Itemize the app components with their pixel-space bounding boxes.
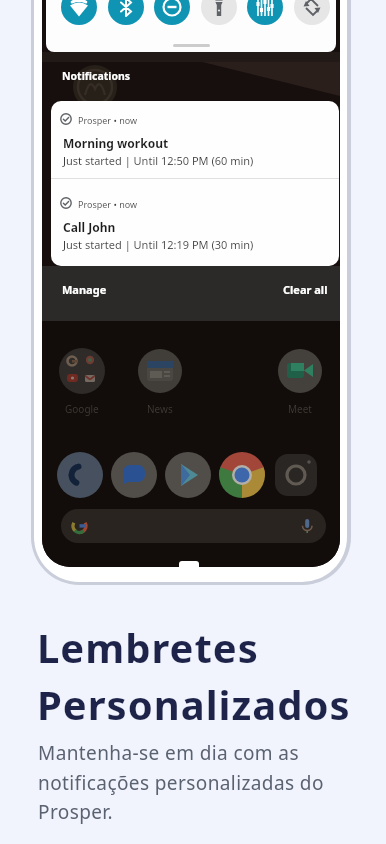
button[interactable] (59, 348, 105, 394)
staticText: Meet (288, 402, 312, 416)
button[interactable] (61, 0, 97, 25)
button[interactable] (294, 0, 330, 25)
button[interactable] (154, 0, 190, 25)
button[interactable] (138, 349, 182, 393)
button[interactable] (273, 452, 319, 498)
staticText: Mantenha-se em dia com as notificações p… (38, 740, 324, 824)
staticText: Just started | Until 12:50 PM (60 min) (63, 153, 254, 168)
staticText: Google (65, 402, 99, 416)
staticText: Notifications (62, 69, 131, 83)
staticText: Lembretes Personalizados (37, 620, 351, 731)
button[interactable] (201, 0, 237, 25)
staticText: Call John (63, 219, 116, 235)
staticText: Prosper • now (78, 114, 138, 126)
button[interactable]: Manage (62, 282, 107, 297)
staticText: Prosper • now (78, 198, 138, 210)
button[interactable] (108, 0, 144, 25)
button[interactable] (57, 452, 103, 498)
button[interactable]: Prosper • now (51, 101, 339, 266)
button[interactable]: Clear all (283, 282, 328, 297)
button[interactable] (278, 349, 322, 393)
button[interactable] (111, 452, 157, 498)
button[interactable] (61, 509, 326, 543)
button[interactable] (247, 0, 283, 25)
button[interactable] (219, 452, 265, 498)
staticText: Morning workout (63, 135, 169, 151)
staticText: News (147, 402, 173, 416)
staticText: Just started | Until 12:19 PM (30 min) (63, 237, 254, 252)
button[interactable] (165, 452, 211, 498)
